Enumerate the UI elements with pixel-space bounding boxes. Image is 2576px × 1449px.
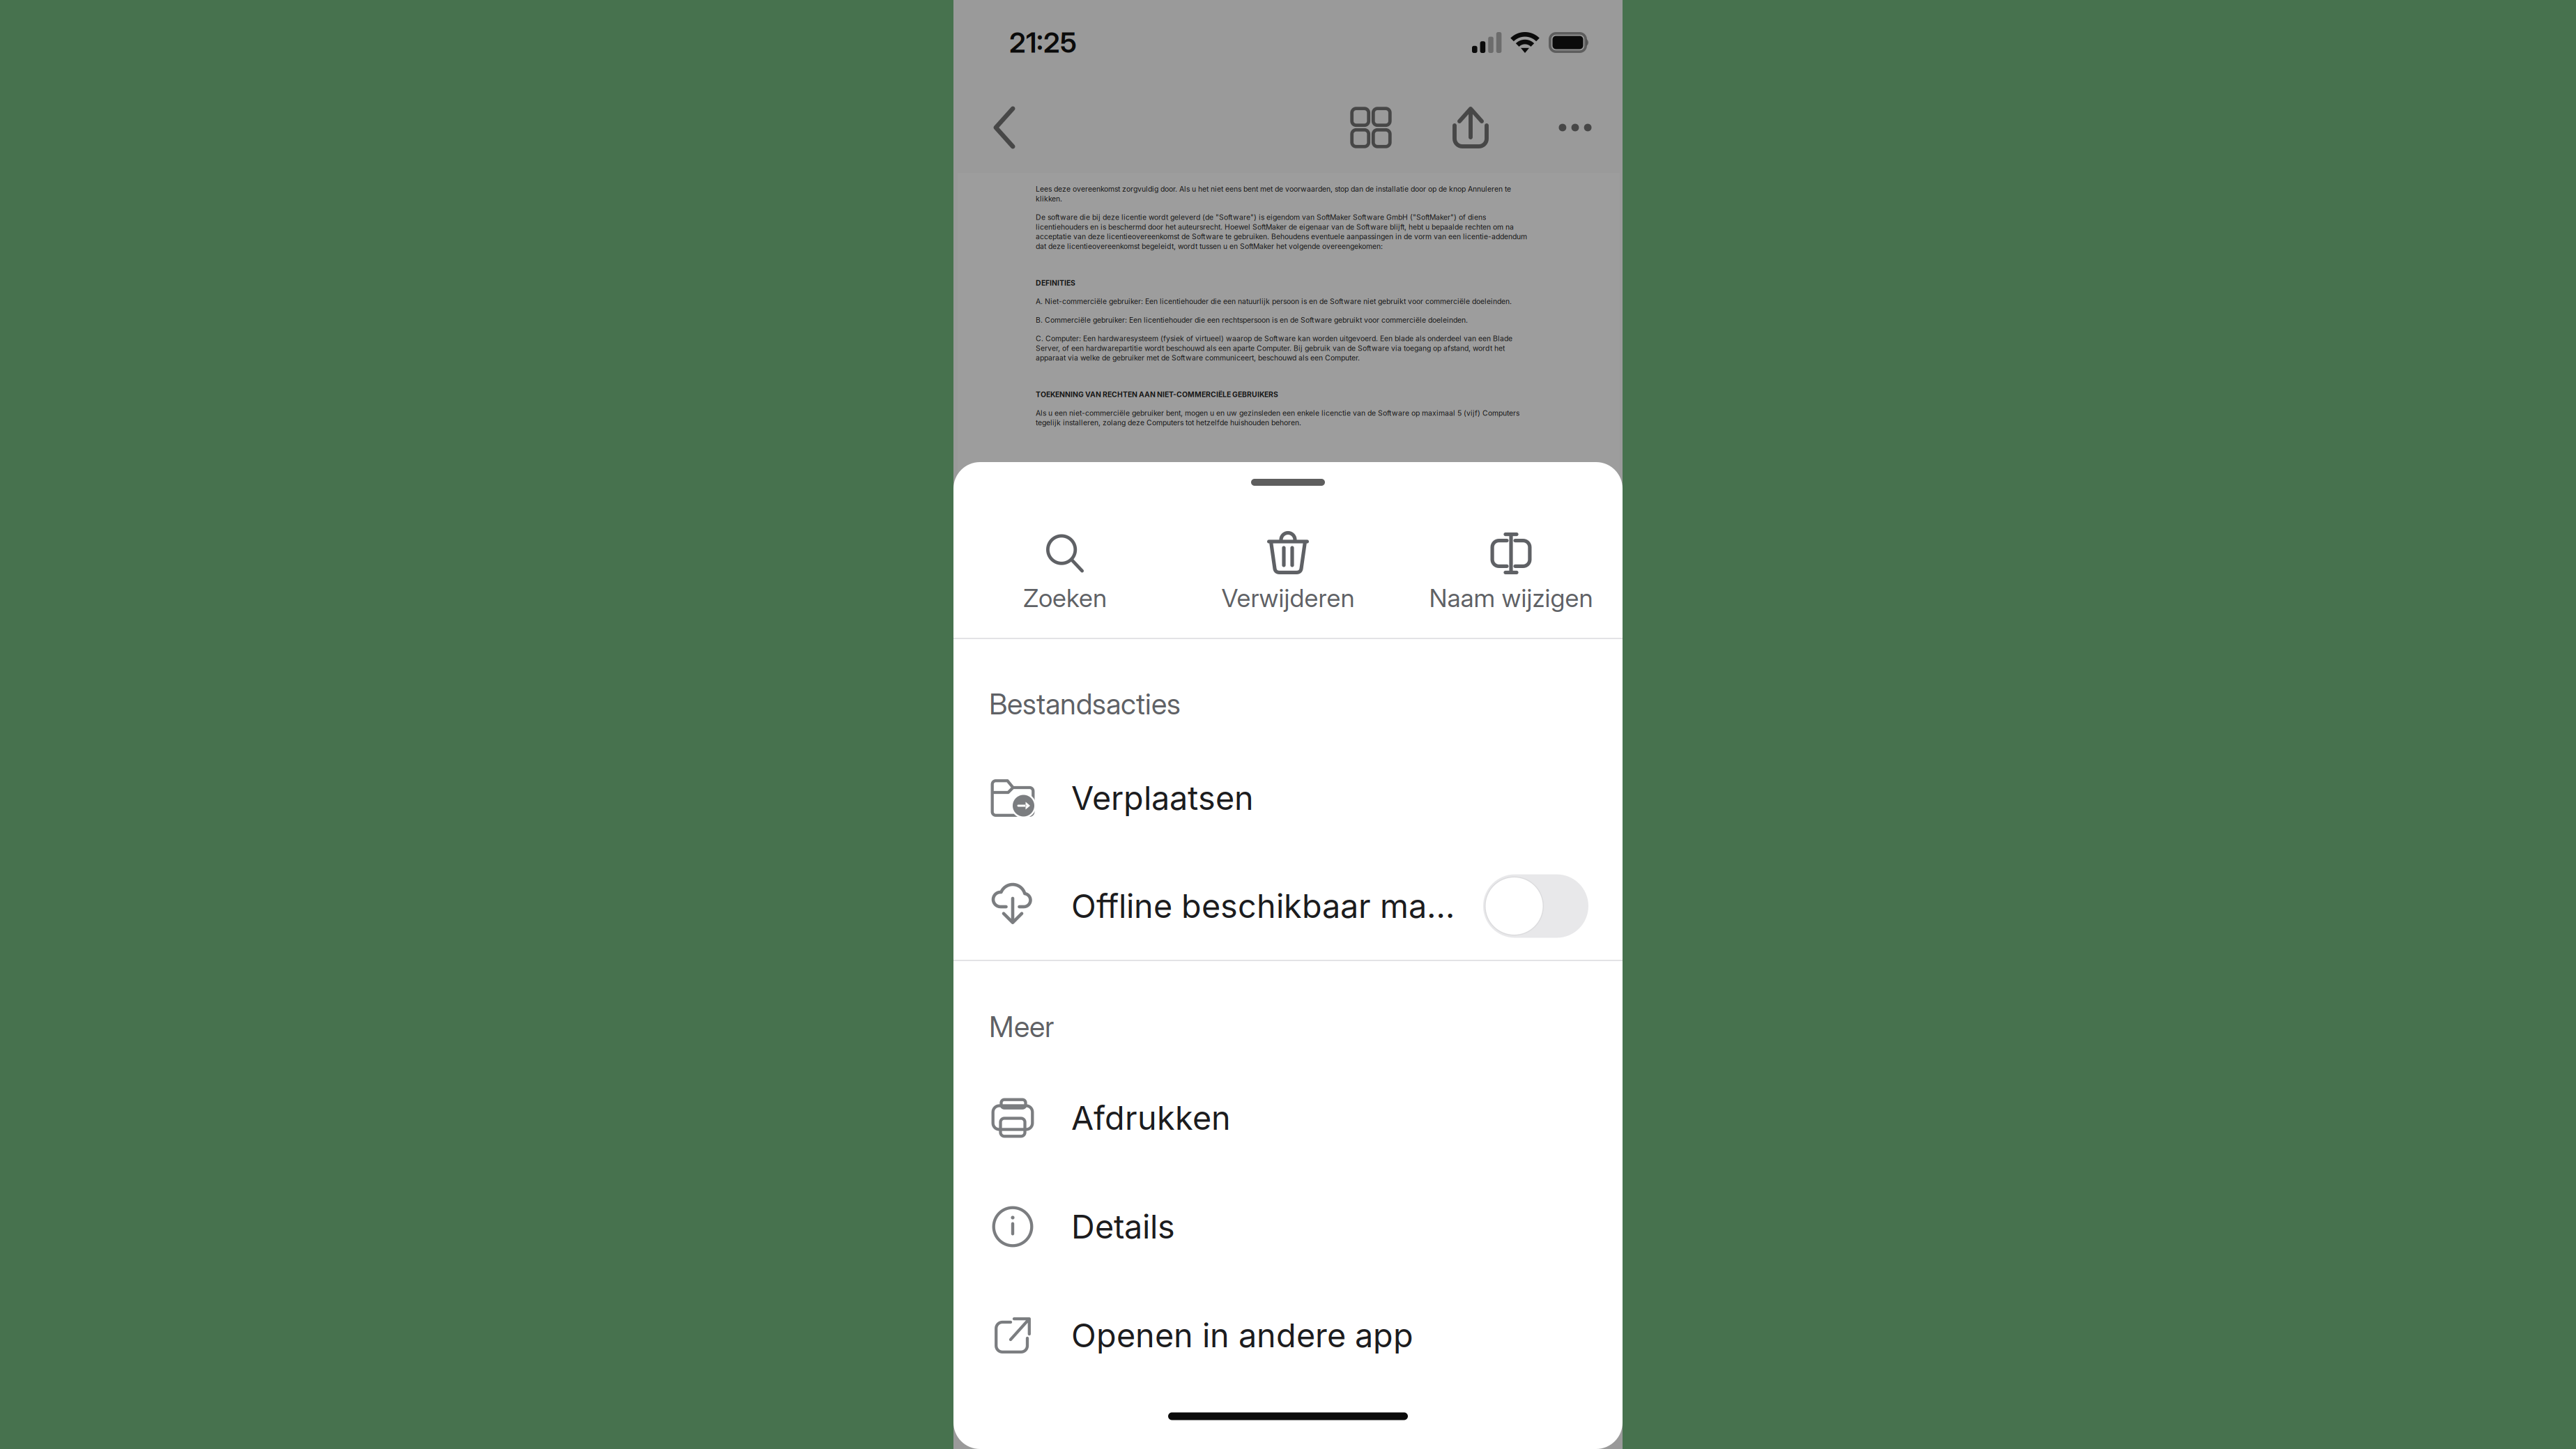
staticText: DEFINITIES (1036, 279, 1075, 287)
button[interactable]: Back (971, 94, 1038, 161)
staticText: Verplaatsen (1071, 778, 1254, 818)
staticText: Openen in andere app (1071, 1316, 1413, 1355)
button[interactable]: Offline beschikbaar ma… (953, 852, 1623, 960)
button[interactable]: Openen in andere app (953, 1281, 1623, 1390)
staticText: C. Computer: Een hardwaresysteem (fysiek… (1036, 334, 1512, 362)
button[interactable]: Share (1437, 94, 1504, 161)
staticText: Als u een niet-commerciële gebruiker ben… (1036, 409, 1519, 427)
staticText: De software die bij deze licentie wordt … (1036, 213, 1527, 251)
staticText: Naam wijzigen (1429, 583, 1593, 613)
button[interactable]: Verplaatsen (953, 744, 1623, 852)
button[interactable]: Zoeken (953, 504, 1176, 636)
staticText: Lees deze overeenkomst zorgvuldig door. … (1036, 185, 1511, 203)
button[interactable]: Details (953, 1172, 1623, 1281)
staticText: Offline beschikbaar ma… (1071, 886, 1455, 926)
button[interactable]: Page thumbnails (1337, 94, 1404, 161)
button[interactable]: Naam wijzigen (1400, 504, 1623, 636)
staticText: Bestandsacties (989, 687, 1181, 721)
button[interactable]: More options (1542, 94, 1609, 161)
staticText: A. Niet-commerciële gebruiker: Een licen… (1036, 297, 1512, 306)
staticText: TOEKENNING VAN RECHTEN AAN NIET-COMMERCI… (1036, 390, 1278, 399)
staticText: Details (1071, 1207, 1175, 1246)
button[interactable]: Afdrukken (953, 1064, 1623, 1172)
button[interactable]: Verwijderen (1176, 504, 1400, 636)
staticText: Meer (989, 1009, 1054, 1044)
staticText: Zoeken (1023, 583, 1107, 613)
staticText: Afdrukken (1071, 1098, 1231, 1138)
staticText: Verwijderen (1221, 583, 1355, 613)
staticText: 21:25 (1009, 26, 1077, 59)
staticText: B. Commerciële gebruiker: Een licentieho… (1036, 316, 1468, 324)
